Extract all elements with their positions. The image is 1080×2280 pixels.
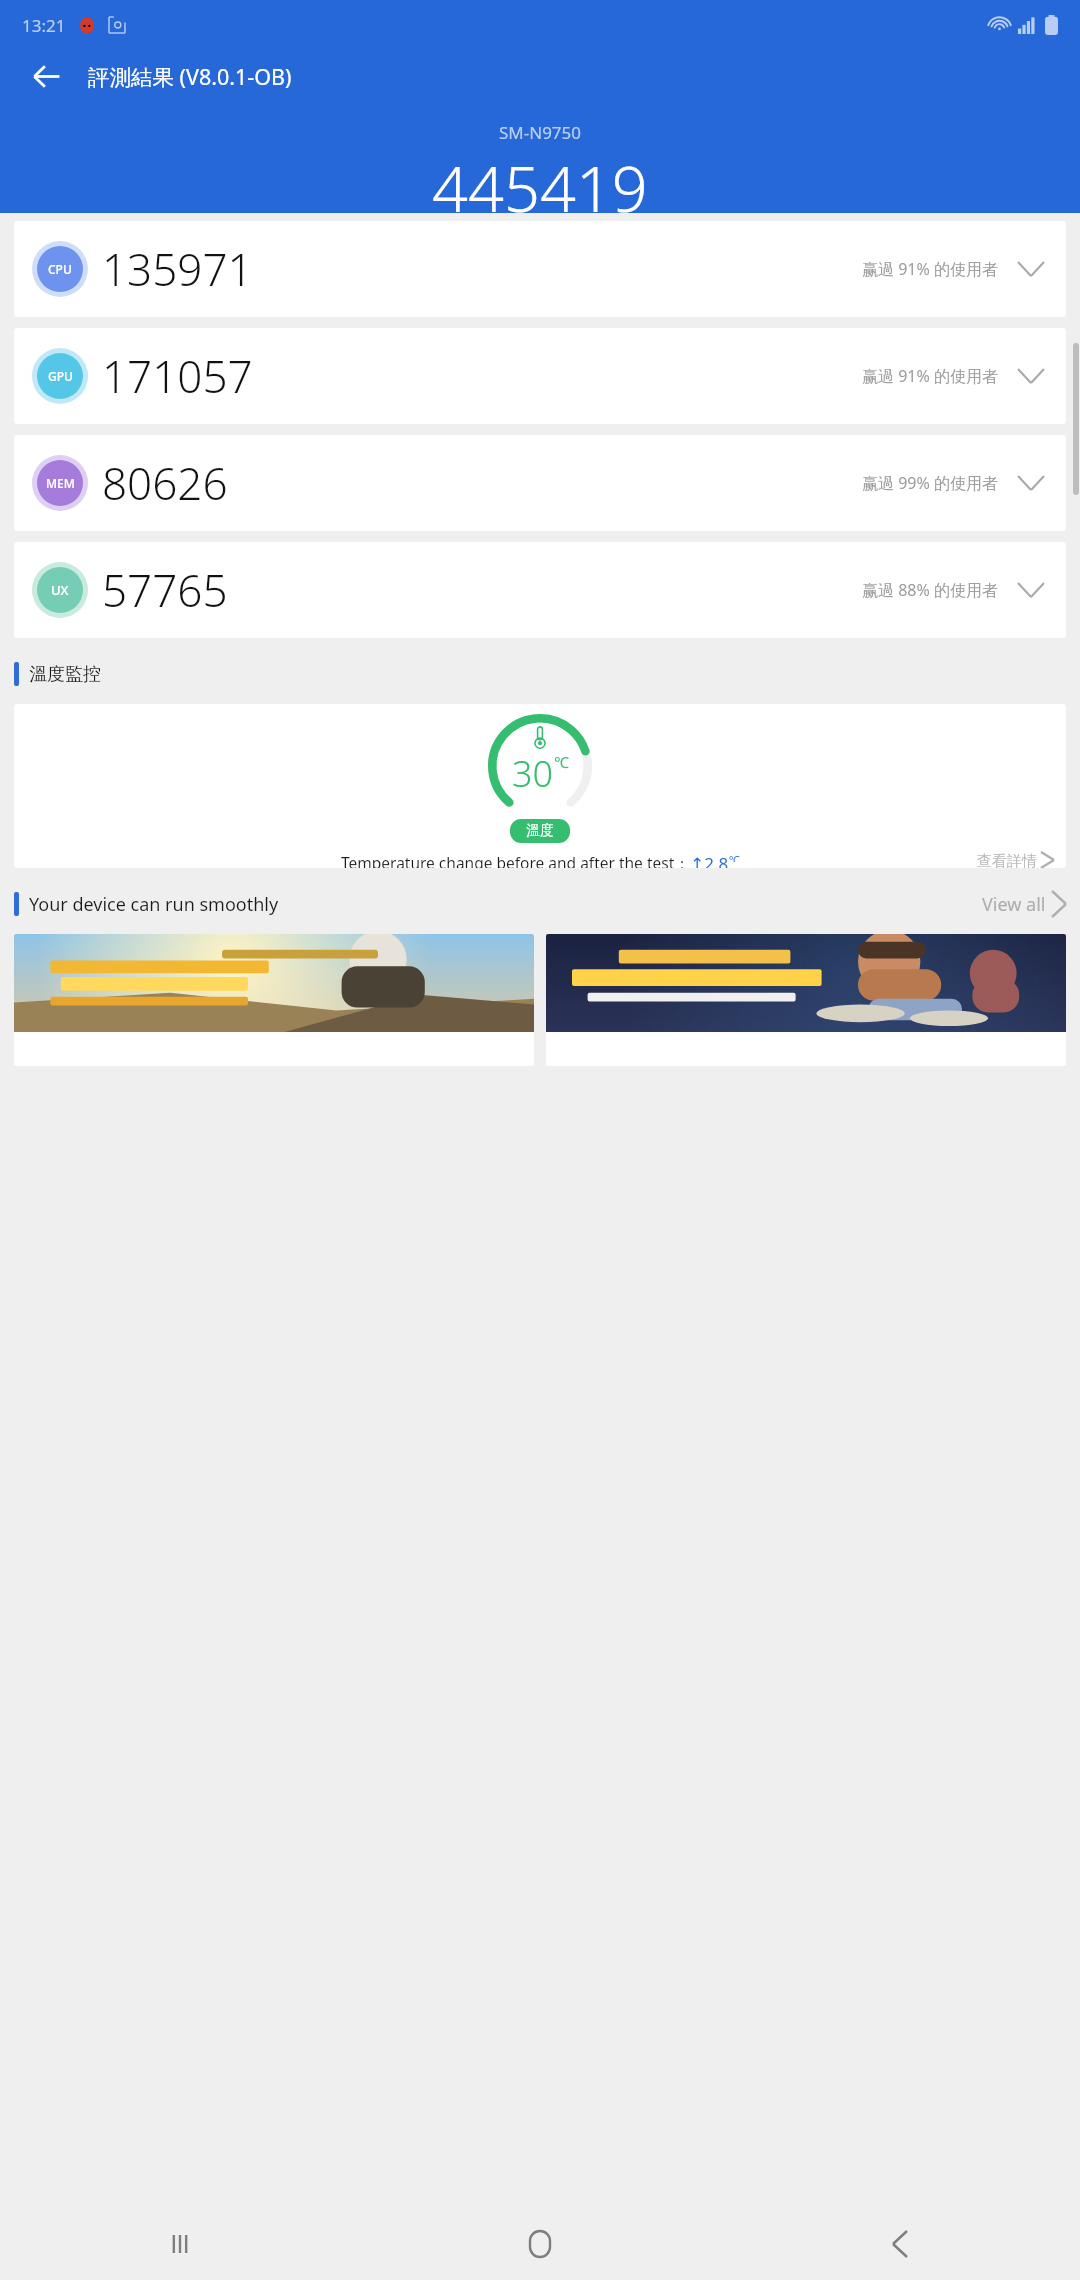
button[interactable]: Back xyxy=(720,2208,1080,2280)
button[interactable]: CPU xyxy=(14,221,1066,317)
staticText: MEM xyxy=(46,475,75,491)
staticText: 評測結果 (V8.0.1-OB) xyxy=(88,62,292,91)
button[interactable]: GPU xyxy=(14,328,1066,424)
button[interactable]: Home xyxy=(360,2208,720,2280)
button[interactable]: MEM xyxy=(14,435,1066,531)
button[interactable]: UX xyxy=(14,542,1066,638)
button[interactable]: 30 xyxy=(14,704,1066,868)
button[interactable]: Recent apps xyxy=(0,2208,360,2280)
staticText: GPU xyxy=(48,368,73,384)
staticText: UX xyxy=(51,581,69,599)
staticText: 13:21 xyxy=(22,14,66,37)
staticText: Your device can run smoothly xyxy=(29,892,279,917)
button[interactable] xyxy=(14,934,534,1066)
staticText: 80626 xyxy=(102,453,228,513)
other: Expand CPU details xyxy=(1014,252,1048,286)
staticText: ↑2.8 xyxy=(690,852,729,868)
staticText: 溫度 xyxy=(526,822,554,840)
other: Expand GPU details xyxy=(1014,359,1048,393)
other: Expand MEM details xyxy=(1014,466,1048,500)
staticText: ℃ xyxy=(554,752,569,772)
other: Expand UX details xyxy=(1014,573,1048,607)
staticText: 赢過 91% 的使用者 xyxy=(862,258,998,280)
staticText: 445419 xyxy=(432,145,648,213)
staticText: 135971 xyxy=(102,239,253,299)
staticText: 赢過 99% 的使用者 xyxy=(862,472,998,494)
button[interactable] xyxy=(546,934,1066,1066)
staticText: 赢過 88% 的使用者 xyxy=(862,579,998,601)
staticText: CPU xyxy=(48,261,72,277)
staticText: 57765 xyxy=(102,560,228,620)
staticText: 赢過 91% 的使用者 xyxy=(862,365,998,387)
staticText: View all xyxy=(982,892,1046,917)
staticText: SM-N9750 xyxy=(499,121,582,144)
staticText: ℃ xyxy=(729,852,740,862)
staticText: 171057 xyxy=(102,346,253,406)
staticText: 30 xyxy=(512,749,554,798)
staticText: 查看詳情 xyxy=(977,852,1037,868)
staticText: 溫度監控 xyxy=(29,663,101,686)
button[interactable]: Your device can run smoothly xyxy=(14,884,1066,924)
staticText: Temperature change before and after the … xyxy=(341,852,690,868)
button[interactable]: Back xyxy=(22,52,70,100)
